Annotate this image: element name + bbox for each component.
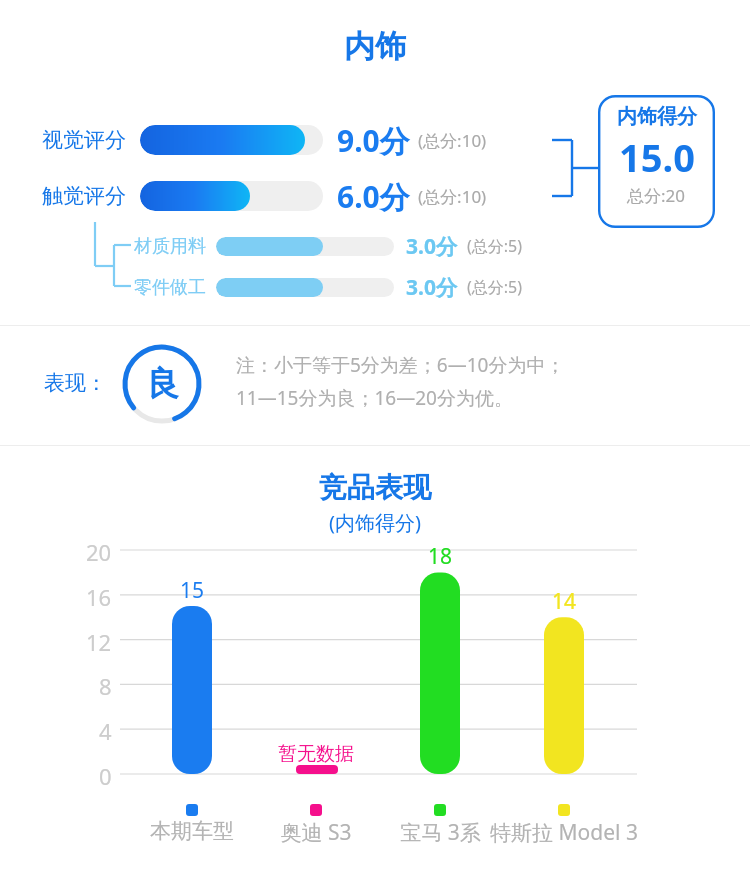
staticText: 11—15分为良；16—20分为优。 [236,385,513,411]
button[interactable]: 特斯拉 Model 3 [479,818,649,847]
button[interactable]: 奥迪 S3 [231,818,401,847]
staticText: 9.0分 [337,120,410,161]
staticText: 总分:20 [627,184,686,207]
staticText: (总分:5) [467,276,523,298]
staticText: 16 [86,582,112,612]
staticText: 注：小于等于5分为差；6—10分为中； [236,352,565,378]
staticText: 15.0 [619,131,695,183]
staticText: 6.0分 [337,176,410,217]
staticText: 内饰 [344,27,406,66]
button[interactable]: 零件做工 [134,272,523,302]
staticText: (总分:10) [418,129,487,152]
button[interactable]: 宝马 3系 [355,818,525,847]
staticText: 暂无数据 [278,742,354,766]
staticText: (总分:5) [467,235,523,257]
button[interactable]: 本期车型 [107,818,277,844]
staticText: 本期车型 [150,818,234,844]
staticText: 特斯拉 Model 3 [490,818,638,847]
staticText: 18 [428,542,453,571]
staticText: 触觉评分 [42,183,126,209]
button[interactable]: 视觉评分 [42,118,487,162]
button[interactable]: 材质用料 [134,231,523,261]
staticText: 3.0分 [406,273,457,302]
staticText: 12 [86,627,112,657]
staticText: 良 [146,363,179,405]
button[interactable]: 良 [122,344,202,424]
staticText: 20 [86,537,112,567]
staticText: 材质用料 [134,235,206,258]
staticText: 宝马 3系 [400,818,481,847]
staticText: 3.0分 [406,232,457,261]
staticText: 零件做工 [134,276,206,299]
staticText: 视觉评分 [42,127,126,153]
button[interactable]: 触觉评分 [42,174,487,218]
staticText: 14 [552,587,577,616]
staticText: (内饰得分) [329,509,421,536]
staticText: 奥迪 S3 [280,818,352,847]
staticText: 15 [180,576,205,605]
staticText: (总分:10) [418,185,487,208]
staticText: 竞品表现 [319,470,431,505]
staticText: 0 [99,761,112,791]
staticText: 表现： [44,370,107,396]
staticText: 8 [99,671,112,701]
staticText: 4 [99,716,112,746]
staticText: 内饰得分 [617,104,697,129]
button[interactable] [598,95,715,228]
